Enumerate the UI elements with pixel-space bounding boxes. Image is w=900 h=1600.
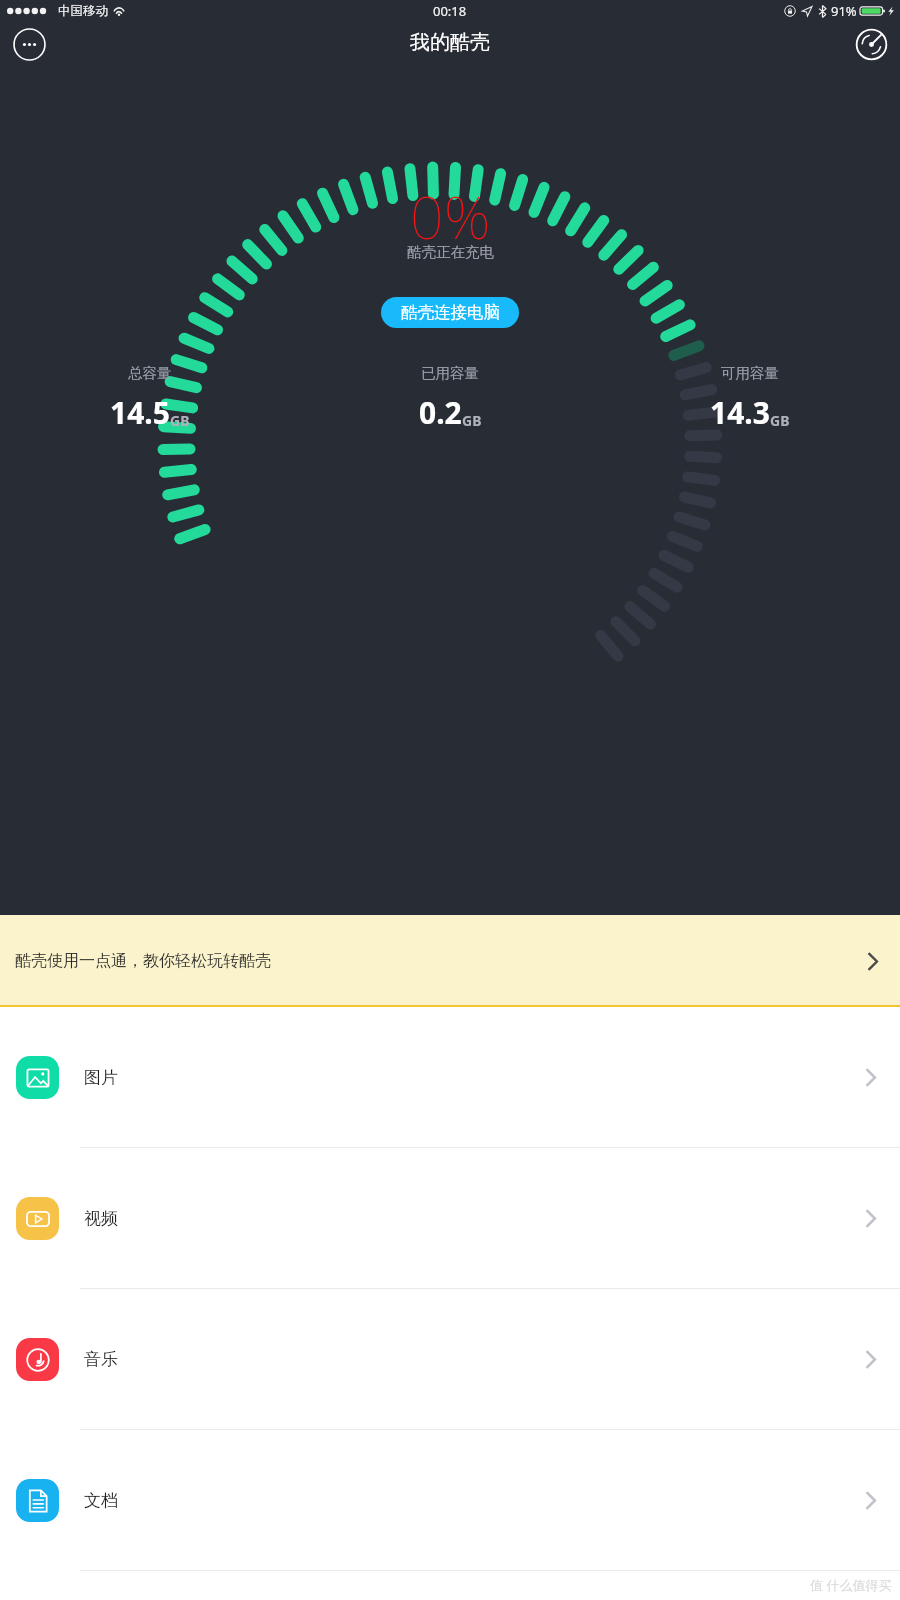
staticText: 视频 [84, 1208, 118, 1229]
staticText: 已用容量 [421, 364, 479, 382]
staticText: 图片 [84, 1067, 118, 1088]
button[interactable]: 图片 [0, 1007, 900, 1148]
staticText: 酷壳使用一点通，教你轻松玩转酷壳 [15, 951, 271, 971]
staticText: 我的酷壳 [410, 30, 490, 55]
staticText: 文档 [84, 1490, 118, 1511]
staticText: 可用容量 [721, 364, 779, 382]
button[interactable]: 视频 [0, 1148, 900, 1289]
staticText: 00:18 [433, 2, 467, 20]
staticText: 14.5 [110, 392, 170, 433]
button[interactable]: 酷壳使用一点通，教你轻松玩转酷壳 [0, 915, 900, 1007]
staticText: 值 什么值得买 [810, 1576, 892, 1594]
staticText: GB [462, 411, 482, 430]
button[interactable]: 文档 [0, 1430, 900, 1571]
staticText: 14.3 [710, 392, 770, 433]
staticText: GB [770, 411, 790, 430]
staticText: 0.2 [419, 392, 462, 433]
button[interactable]: 音乐 [0, 1289, 900, 1430]
staticText: 音乐 [84, 1349, 118, 1370]
button[interactable]: 酷壳连接电脑 [381, 297, 519, 328]
staticText: 酷壳连接电脑 [401, 302, 500, 323]
button[interactable]: More options [13, 28, 46, 61]
staticText: 中国移动 [58, 3, 108, 19]
staticText: GB [170, 411, 190, 430]
staticText: 0% [410, 176, 491, 256]
button[interactable]: Disc info [855, 28, 888, 61]
staticText: 总容量 [128, 364, 172, 382]
staticText: 酷壳正在充电 [407, 243, 494, 261]
staticText: 91% [831, 2, 857, 20]
